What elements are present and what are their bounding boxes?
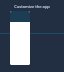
staticText: Customize the app (14, 4, 50, 9)
